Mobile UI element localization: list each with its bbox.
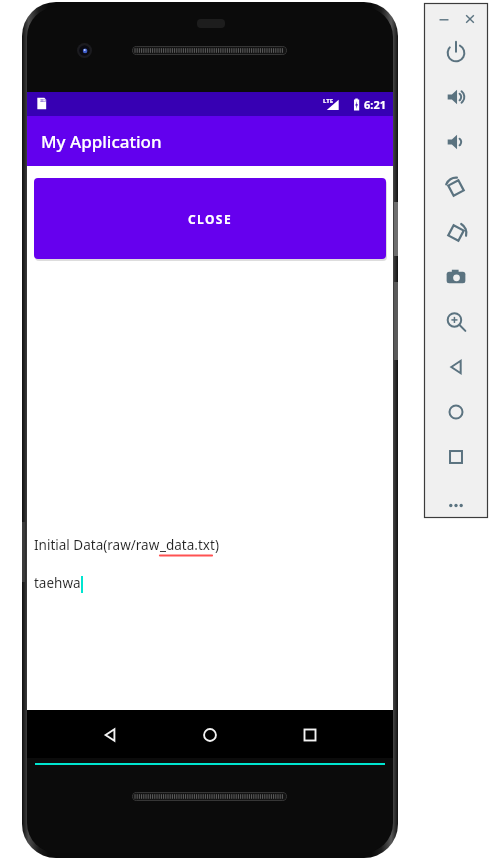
button[interactable]: Home: [199, 724, 221, 746]
button[interactable]: Rotate left: [443, 174, 469, 200]
button[interactable]: More: [443, 492, 469, 518]
staticText: ): [215, 536, 220, 554]
button[interactable]: Overview: [443, 444, 469, 470]
button[interactable]: Volume down: [443, 129, 469, 155]
staticText: taehwa: [34, 574, 81, 592]
staticText: 6:21: [364, 97, 386, 112]
button[interactable]: Power: [443, 39, 469, 65]
button[interactable]: Minimize: [436, 11, 452, 27]
staticText: CLOSE: [188, 211, 232, 227]
button[interactable]: Take screenshot: [443, 264, 469, 290]
button[interactable]: Close: [462, 11, 478, 27]
staticText: _data.txt: [160, 536, 215, 554]
button[interactable]: Rotate right: [443, 219, 469, 245]
button[interactable]: CLOSE: [34, 178, 386, 259]
staticText: My Application: [41, 130, 162, 153]
button[interactable]: Home: [443, 399, 469, 425]
staticText: LTE: [323, 97, 334, 105]
button[interactable]: Back: [99, 724, 121, 746]
button[interactable]: Recent apps: [299, 724, 321, 746]
button[interactable]: Back: [443, 354, 469, 380]
button[interactable]: Volume up: [443, 84, 469, 110]
button[interactable]: Zoom: [443, 309, 469, 335]
staticText: Initial Data(raw/raw: [34, 536, 160, 554]
